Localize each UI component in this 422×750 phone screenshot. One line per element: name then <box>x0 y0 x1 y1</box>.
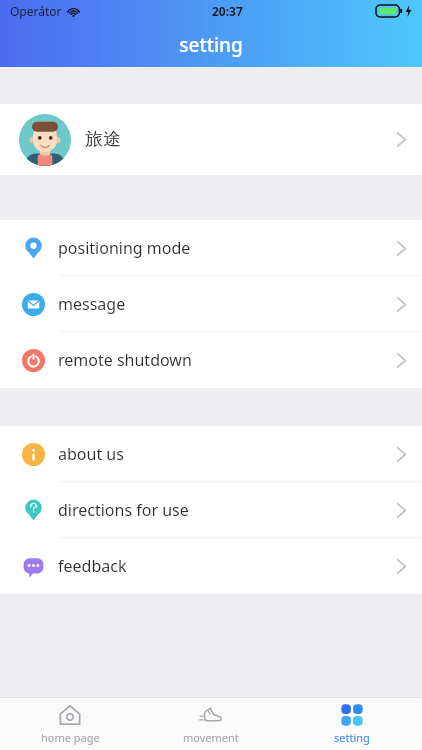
staticText: movement <box>183 730 239 745</box>
staticText: positioning mode <box>58 237 191 259</box>
button[interactable]: about us <box>0 426 422 482</box>
staticText: remote shutdown <box>58 349 192 371</box>
staticText: about us <box>58 443 124 465</box>
staticText: setting <box>179 32 243 58</box>
staticText: 旅途 <box>85 128 121 151</box>
button[interactable]: directions for use <box>0 482 422 538</box>
staticText: Operátor <box>10 3 62 19</box>
button[interactable]: home page <box>0 698 140 750</box>
staticText: setting <box>334 730 370 745</box>
button[interactable]: remote shutdown <box>0 332 422 388</box>
button[interactable]: positioning mode <box>0 220 422 276</box>
staticText: 20:37 <box>212 3 243 19</box>
staticText: home page <box>41 730 100 745</box>
button[interactable]: message <box>0 276 422 332</box>
button[interactable]: setting <box>281 698 422 750</box>
staticText: feedback <box>58 555 127 577</box>
button[interactable]: 旅途 <box>0 104 422 175</box>
button[interactable]: movement <box>140 698 281 750</box>
button[interactable]: feedback <box>0 538 422 594</box>
staticText: message <box>58 293 126 315</box>
staticText: directions for use <box>58 499 189 521</box>
